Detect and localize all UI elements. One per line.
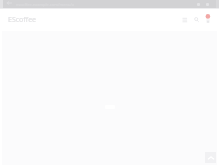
staticText: EScoffee bbox=[8, 15, 37, 25]
button[interactable]: Cart bbox=[203, 12, 214, 27]
button[interactable]: Menu bbox=[180, 15, 189, 28]
button[interactable]: Search bbox=[192, 15, 201, 28]
button[interactable]: Scroll to top bbox=[205, 152, 216, 163]
